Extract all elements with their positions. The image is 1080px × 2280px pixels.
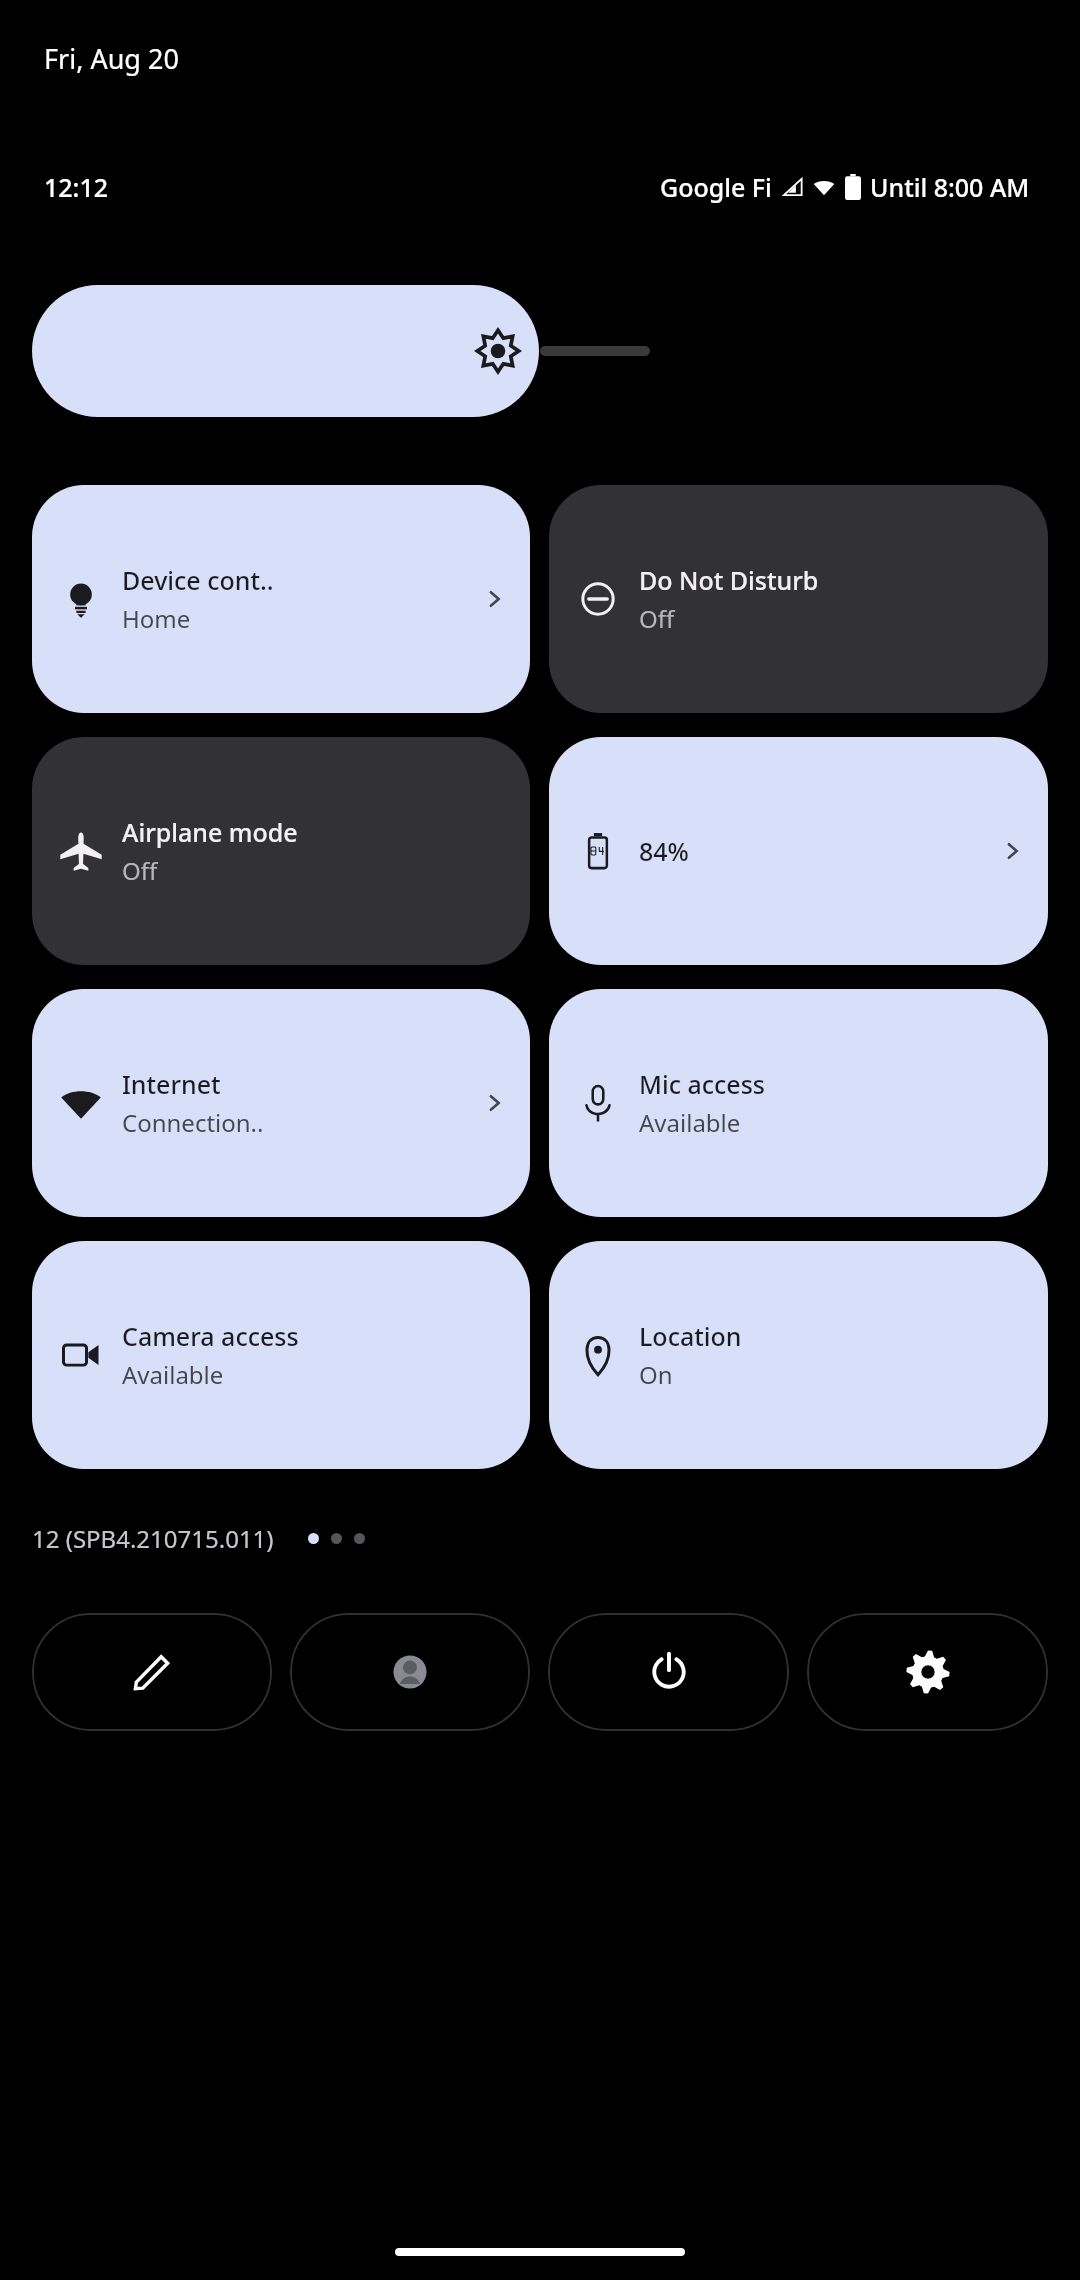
staticText: 12 (SPB4.210715.011) — [32, 1522, 274, 1555]
staticText: Fri, Aug 20 — [44, 40, 179, 77]
staticText: 84% — [639, 834, 689, 868]
button[interactable]: Power options — [548, 1613, 789, 1731]
staticText: Connection.. — [122, 1106, 264, 1139]
button[interactable]: Internet — [32, 989, 530, 1217]
button[interactable]: Device cont.. — [32, 485, 530, 713]
staticText: 12:12 — [44, 170, 109, 204]
staticText: Mic access — [639, 1067, 765, 1101]
staticText: Device cont.. — [122, 563, 274, 597]
button[interactable] — [32, 285, 539, 417]
button[interactable]: Settings — [807, 1613, 1048, 1731]
staticText: Airplane mode — [122, 815, 298, 849]
staticText: Home — [122, 602, 191, 635]
button[interactable]: Edit tiles — [32, 1613, 272, 1731]
staticText: Google Fi — [660, 170, 772, 204]
staticText: Location — [639, 1319, 742, 1353]
staticText: Camera access — [122, 1319, 299, 1353]
button[interactable]: Mic access — [549, 989, 1048, 1217]
staticText: On — [639, 1358, 673, 1391]
button[interactable]: Airplane mode — [32, 737, 530, 965]
staticText: Available — [639, 1106, 741, 1139]
staticText: Do Not Disturb — [639, 563, 819, 597]
button[interactable]: Camera access — [32, 1241, 530, 1469]
staticText: Internet — [122, 1067, 221, 1101]
button[interactable]: Location — [549, 1241, 1048, 1469]
staticText: Available — [122, 1358, 224, 1391]
staticText: Until 8:00 AM — [870, 170, 1030, 204]
button[interactable]: 84% — [549, 737, 1048, 965]
staticText: Off — [122, 854, 158, 887]
staticText: Off — [639, 602, 675, 635]
button[interactable]: User profile — [290, 1613, 530, 1731]
button[interactable]: Do Not Disturb — [549, 485, 1048, 713]
